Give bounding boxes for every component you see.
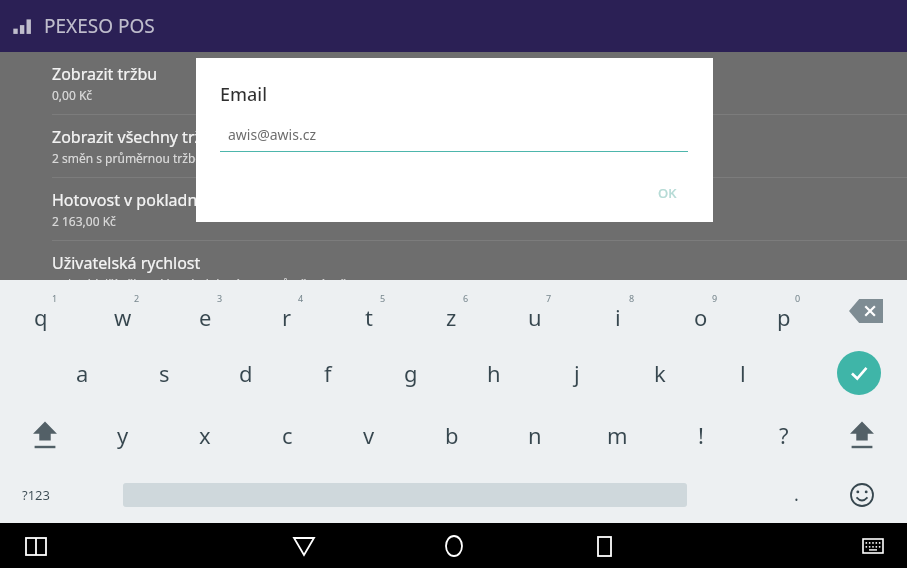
button[interactable]: ?123 bbox=[14, 478, 58, 512]
button[interactable]: Enter bbox=[837, 351, 881, 395]
button[interactable]: Zobrazit tržbu bbox=[0, 52, 907, 115]
button[interactable]: 0 bbox=[742, 280, 825, 342]
button[interactable]: Shift bbox=[22, 412, 68, 458]
staticText: . bbox=[794, 482, 799, 507]
staticText: ?123 bbox=[22, 486, 50, 504]
button[interactable]: Zobrazit všechny tržby bbox=[0, 115, 907, 178]
staticText: j bbox=[574, 358, 580, 388]
staticText: r bbox=[282, 302, 292, 332]
button[interactable]: Home bbox=[434, 526, 474, 566]
staticText: Email bbox=[220, 82, 268, 107]
staticText: c bbox=[282, 420, 293, 450]
staticText: Hotovost v pokladně bbox=[52, 189, 207, 211]
other: Logo bbox=[12, 15, 34, 37]
button[interactable]: j bbox=[535, 342, 618, 404]
button[interactable]: x bbox=[164, 404, 246, 466]
staticText: 3 bbox=[217, 292, 223, 304]
staticText: a bbox=[76, 358, 89, 388]
staticText: 0,00 Kč bbox=[52, 87, 93, 103]
staticText: OK bbox=[658, 184, 677, 202]
button[interactable]: ? bbox=[742, 404, 825, 466]
staticText: h bbox=[487, 358, 501, 388]
button[interactable]: c bbox=[246, 404, 328, 466]
staticText: e bbox=[199, 302, 212, 332]
button[interactable]: Uživatelská rychlost bbox=[0, 241, 907, 304]
button[interactable]: 5 bbox=[328, 280, 410, 342]
staticText: Nejrychlejší uživatel je Administrátor s… bbox=[52, 276, 406, 292]
staticText: 0 bbox=[795, 292, 801, 304]
staticText: 2 směn s průměrnou tržbou bbox=[52, 150, 211, 166]
button[interactable]: Split screen bbox=[20, 530, 52, 562]
staticText: z bbox=[446, 302, 457, 332]
staticText: 2 163,00 Kč bbox=[52, 213, 116, 229]
staticText: Uživatelská rychlost bbox=[52, 252, 201, 274]
button[interactable]: s bbox=[123, 342, 205, 404]
button[interactable]: m bbox=[576, 404, 659, 466]
button[interactable]: h bbox=[452, 342, 535, 404]
staticText: g bbox=[404, 358, 418, 388]
staticText: s bbox=[159, 358, 170, 388]
staticText: t bbox=[365, 302, 373, 332]
button[interactable]: 4 bbox=[246, 280, 328, 342]
button[interactable]: , bbox=[118, 474, 139, 515]
staticText: awis@awis.cz bbox=[228, 125, 316, 144]
staticText: k bbox=[654, 358, 666, 388]
staticText: y bbox=[117, 420, 129, 450]
button[interactable]: 7 bbox=[493, 280, 576, 342]
staticText: d bbox=[239, 358, 253, 388]
button[interactable]: l bbox=[701, 342, 784, 404]
staticText: l bbox=[740, 358, 746, 388]
button[interactable]: 9 bbox=[659, 280, 742, 342]
staticText: 8 bbox=[629, 292, 635, 304]
staticText: m bbox=[607, 420, 628, 450]
button[interactable]: d bbox=[205, 342, 287, 404]
staticText: 6 bbox=[463, 292, 469, 304]
staticText: 1 bbox=[52, 292, 58, 304]
staticText: 9 bbox=[712, 292, 718, 304]
button[interactable]: 3 bbox=[164, 280, 246, 342]
staticText: 4 bbox=[298, 292, 304, 304]
button[interactable]: 2 bbox=[82, 280, 164, 342]
button[interactable]: Hotovost v pokladně bbox=[0, 178, 907, 241]
staticText: i bbox=[615, 302, 621, 332]
button[interactable]: y bbox=[82, 404, 164, 466]
staticText: b bbox=[445, 420, 459, 450]
button[interactable]: b bbox=[410, 404, 493, 466]
staticText: PEXESO POS bbox=[44, 13, 155, 39]
staticText: x bbox=[199, 420, 211, 450]
staticText: 5 bbox=[380, 292, 386, 304]
button[interactable]: Shift bbox=[839, 412, 885, 458]
staticText: 7 bbox=[546, 292, 552, 304]
button[interactable]: f bbox=[287, 342, 369, 404]
staticText: w bbox=[114, 302, 132, 332]
staticText: q bbox=[34, 302, 48, 332]
button[interactable]: Backspace bbox=[843, 288, 889, 334]
staticText: f bbox=[324, 358, 332, 388]
button[interactable]: Recents bbox=[584, 526, 624, 566]
staticText: Zobrazit tržbu bbox=[52, 63, 158, 85]
button[interactable]: Back bbox=[284, 526, 324, 566]
staticText: ! bbox=[698, 420, 704, 450]
button[interactable]: g bbox=[369, 342, 452, 404]
button[interactable]: 8 bbox=[576, 280, 659, 342]
staticText: ? bbox=[779, 420, 789, 450]
staticText: v bbox=[363, 420, 375, 450]
staticText: u bbox=[528, 302, 542, 332]
button[interactable]: OK bbox=[650, 180, 685, 206]
button[interactable]: n bbox=[493, 404, 576, 466]
button[interactable]: k bbox=[618, 342, 701, 404]
button[interactable]: awis@awis.cz bbox=[220, 125, 688, 152]
button[interactable]: . bbox=[786, 474, 807, 515]
button[interactable]: 1 bbox=[0, 280, 82, 342]
button[interactable]: Emoji bbox=[845, 478, 879, 512]
button[interactable]: v bbox=[328, 404, 410, 466]
staticText: Zobrazit všechny tržby bbox=[52, 126, 220, 148]
button[interactable]: ! bbox=[659, 404, 742, 466]
staticText: o bbox=[694, 302, 708, 332]
staticText: p bbox=[777, 302, 791, 332]
button[interactable]: 6 bbox=[410, 280, 493, 342]
button[interactable]: Keyboard bbox=[857, 530, 889, 562]
staticText: 2 bbox=[134, 292, 140, 304]
button[interactable]: a bbox=[41, 342, 123, 404]
